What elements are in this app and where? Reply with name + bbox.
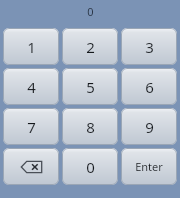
button[interactable]: 7 — [3, 108, 59, 145]
button[interactable]: Enter — [121, 148, 177, 185]
button[interactable]: 5 — [62, 68, 118, 105]
button[interactable]: 3 — [121, 28, 177, 65]
staticText: 6 — [145, 77, 154, 97]
button[interactable]: 6 — [121, 68, 177, 105]
staticText: 2 — [86, 37, 95, 57]
staticText: 1 — [27, 37, 36, 57]
button[interactable]: 1 — [3, 28, 59, 65]
staticText: 5 — [86, 77, 95, 97]
staticText: 0 — [87, 4, 94, 19]
staticText: 7 — [27, 117, 36, 137]
staticText: 4 — [27, 77, 36, 97]
button[interactable]: 0 — [62, 148, 118, 185]
button[interactable]: 2 — [62, 28, 118, 65]
button[interactable]: 9 — [121, 108, 177, 145]
button[interactable]: 4 — [3, 68, 59, 105]
staticText: Enter — [135, 159, 163, 174]
button[interactable]: 8 — [62, 108, 118, 145]
staticText: 8 — [86, 117, 95, 137]
staticText: 0 — [86, 157, 95, 177]
button[interactable]: Backspace — [3, 148, 59, 185]
staticText: 3 — [145, 37, 154, 57]
staticText: 9 — [145, 117, 154, 137]
